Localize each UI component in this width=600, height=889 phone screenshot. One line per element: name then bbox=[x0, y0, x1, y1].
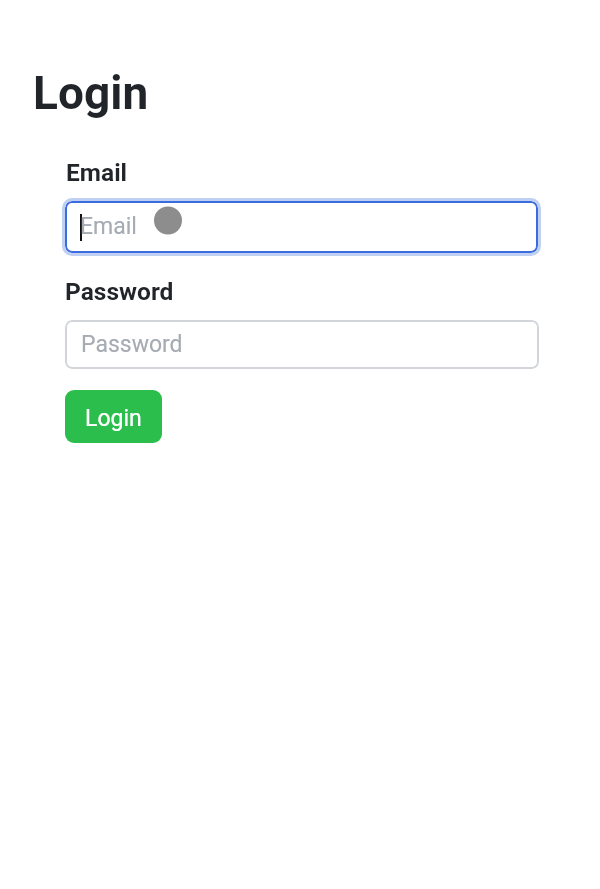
button[interactable]: Password bbox=[65, 320, 539, 369]
staticText: Login bbox=[85, 405, 142, 432]
button[interactable]: Email bbox=[62, 198, 541, 256]
staticText: Email bbox=[66, 158, 128, 187]
staticText: Email bbox=[80, 213, 137, 240]
staticText: Login bbox=[33, 66, 149, 120]
staticText: Password bbox=[81, 331, 183, 358]
staticText: Password bbox=[65, 277, 174, 306]
button[interactable]: Login bbox=[65, 390, 162, 443]
